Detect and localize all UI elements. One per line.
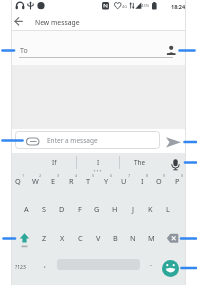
button[interactable]: W xyxy=(27,174,43,188)
staticText: ?123 xyxy=(15,264,26,271)
button[interactable]: P xyxy=(169,174,185,188)
staticText: S xyxy=(42,204,47,214)
staticText: Q xyxy=(15,176,21,186)
button[interactable] xyxy=(164,231,180,245)
staticText: 45% xyxy=(141,3,150,9)
button[interactable]: ?123 xyxy=(10,260,30,274)
staticText: 4 xyxy=(75,173,78,178)
button[interactable]: I xyxy=(83,155,113,169)
button[interactable]: R xyxy=(63,174,79,188)
button[interactable] xyxy=(162,134,183,149)
staticText: N xyxy=(130,233,136,243)
button[interactable]: M xyxy=(143,231,159,245)
staticText: D xyxy=(59,204,65,214)
button[interactable]: L xyxy=(160,202,176,216)
button[interactable] xyxy=(12,15,26,28)
staticText: To xyxy=(20,46,28,56)
staticText: J xyxy=(132,204,134,214)
staticText: M xyxy=(148,233,155,243)
staticText: E xyxy=(51,176,56,186)
button[interactable]: D xyxy=(54,202,70,216)
staticText: K xyxy=(148,204,153,214)
staticText: Enter a message xyxy=(47,136,98,145)
button[interactable]: O xyxy=(151,174,167,188)
button[interactable]: Y xyxy=(98,174,114,188)
staticText: 1 xyxy=(22,173,25,178)
staticText: C xyxy=(78,233,83,243)
staticText: G xyxy=(94,204,100,214)
staticText: 18:24 xyxy=(171,3,186,10)
button[interactable]: B xyxy=(107,231,123,245)
button[interactable]: G xyxy=(89,202,105,216)
button[interactable]: J xyxy=(125,202,141,216)
button[interactable]: X xyxy=(54,231,70,245)
staticText: 2 xyxy=(39,173,42,178)
staticText: Y xyxy=(104,176,109,186)
button[interactable]: V xyxy=(90,231,106,245)
button[interactable]: K xyxy=(142,202,158,216)
button[interactable] xyxy=(17,231,32,245)
button[interactable]: , xyxy=(40,258,50,272)
button[interactable]: N xyxy=(125,231,141,245)
staticText: If xyxy=(52,158,57,167)
staticText: 0 xyxy=(181,173,184,178)
button[interactable]: A xyxy=(18,202,34,216)
button[interactable] xyxy=(162,260,179,277)
staticText: 4G xyxy=(122,4,128,9)
staticText: A xyxy=(24,204,29,214)
button[interactable]: Z xyxy=(36,231,52,245)
staticText: L xyxy=(166,204,170,214)
staticText: R xyxy=(69,176,74,186)
button[interactable]: The xyxy=(124,155,154,169)
button[interactable]: S xyxy=(36,202,52,216)
staticText: X xyxy=(60,233,65,243)
staticText: , xyxy=(44,260,46,270)
staticText: 3 xyxy=(57,173,60,178)
staticText: 7 xyxy=(128,173,131,178)
staticText: P xyxy=(175,176,180,186)
staticText: W xyxy=(32,176,39,186)
button[interactable]: E xyxy=(45,174,61,188)
button[interactable] xyxy=(15,131,160,149)
button[interactable]: F xyxy=(72,202,88,216)
staticText: 5 xyxy=(92,173,95,178)
staticText: I xyxy=(97,158,100,167)
staticText: New message xyxy=(35,18,80,27)
button[interactable] xyxy=(169,156,183,171)
button[interactable]: If xyxy=(39,155,69,169)
staticText: H xyxy=(112,204,118,214)
button[interactable]: Q xyxy=(10,174,26,188)
staticText: Z xyxy=(42,233,47,243)
staticText: 9 xyxy=(163,173,166,178)
button[interactable]: T xyxy=(80,174,96,188)
button[interactable]: H xyxy=(107,202,123,216)
staticText: I xyxy=(141,176,144,186)
button[interactable]: C xyxy=(72,231,88,245)
button[interactable] xyxy=(164,43,179,57)
button[interactable]: . xyxy=(146,257,156,271)
staticText: B xyxy=(113,233,118,243)
staticText: U xyxy=(121,176,127,186)
staticText: T xyxy=(86,176,91,186)
staticText: 6 xyxy=(110,173,113,178)
staticText: O xyxy=(156,176,162,186)
staticText: V xyxy=(96,233,101,243)
staticText: F xyxy=(78,204,82,214)
button[interactable]: I xyxy=(134,174,150,188)
staticText: The xyxy=(134,158,145,167)
staticText: . xyxy=(150,259,152,269)
staticText: 8 xyxy=(146,173,149,178)
button[interactable]: U xyxy=(116,174,132,188)
